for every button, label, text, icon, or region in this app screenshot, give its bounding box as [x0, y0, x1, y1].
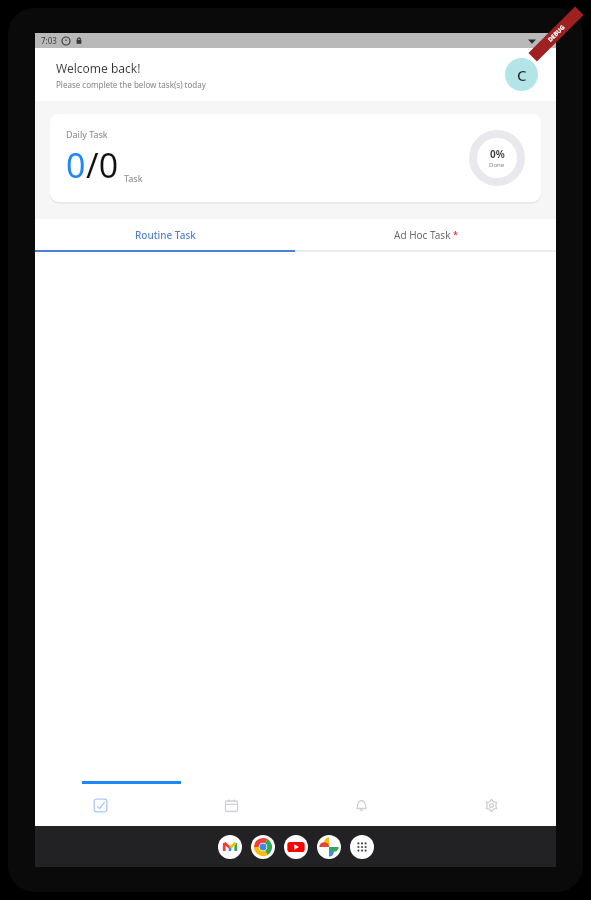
- staticText: C: [517, 65, 527, 85]
- button[interactable]: Profile: [505, 58, 538, 91]
- staticText: Routine Task: [135, 228, 196, 242]
- staticText: 0: [66, 142, 86, 188]
- staticText: DEBUG: [546, 23, 567, 44]
- staticText: 0%: [490, 147, 505, 161]
- staticText: Welcome back!: [56, 60, 141, 76]
- button[interactable]: All apps: [350, 835, 374, 859]
- staticText: /0: [86, 142, 119, 188]
- button[interactable]: Chrome: [251, 835, 275, 859]
- button[interactable]: Notifications: [296, 784, 426, 826]
- button[interactable]: Photos: [317, 835, 341, 859]
- button[interactable]: Tasks: [35, 784, 166, 826]
- staticText: 7:03: [41, 35, 57, 46]
- button[interactable]: Routine Task: [35, 219, 295, 250]
- staticText: Daily Task: [66, 128, 108, 140]
- staticText: Ad Hoc Task: [394, 228, 451, 242]
- button[interactable]: Gmail: [218, 835, 242, 859]
- button[interactable]: Calendar: [166, 784, 296, 826]
- staticText: Task: [124, 172, 143, 184]
- staticText: *: [453, 228, 458, 240]
- staticText: Please complete the below task(s) today: [56, 79, 206, 90]
- staticText: Done: [489, 161, 505, 169]
- button[interactable]: YouTube: [284, 835, 308, 859]
- button[interactable]: Settings: [426, 784, 556, 826]
- button[interactable]: Ad Hoc Task: [295, 219, 556, 250]
